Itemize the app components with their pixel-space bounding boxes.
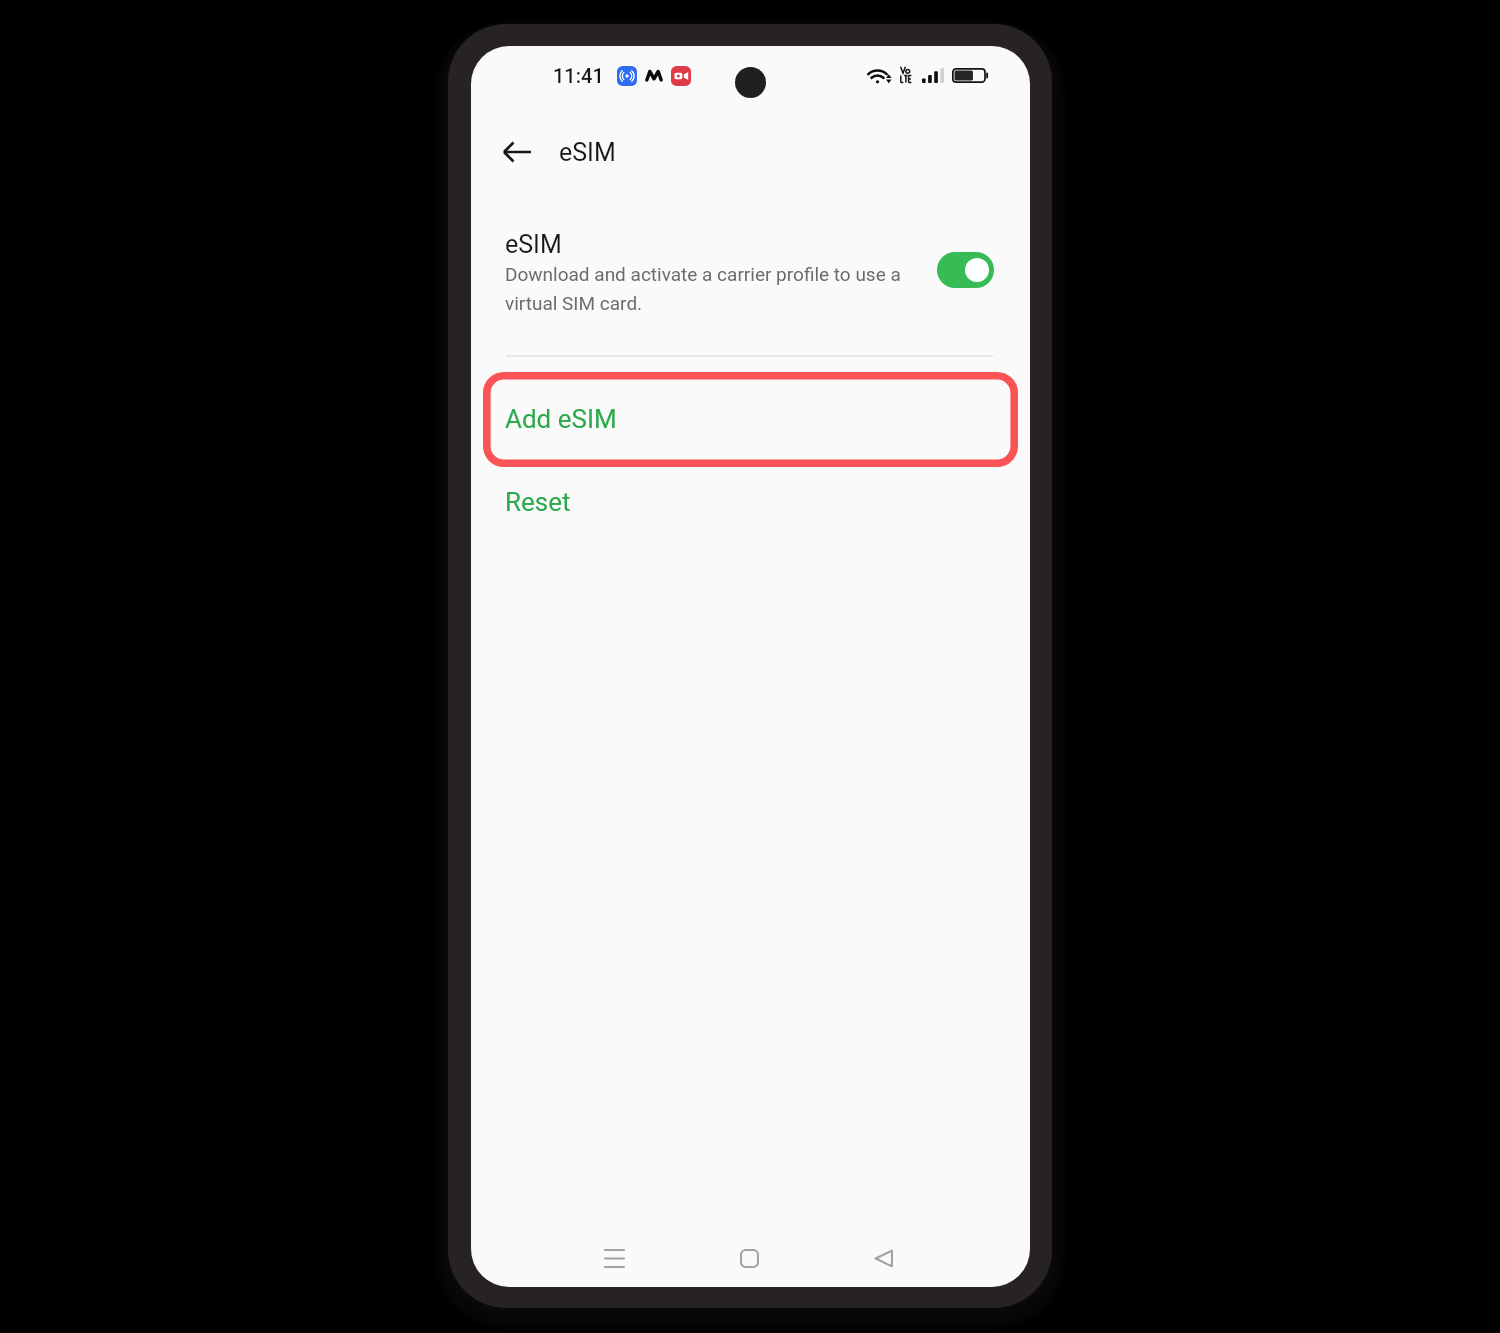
staticText: Reset <box>505 487 571 517</box>
button[interactable]: Home <box>723 1232 775 1284</box>
staticText: 11:41 <box>553 64 604 87</box>
staticText: eSIM <box>505 230 562 259</box>
staticText: eSIM <box>559 138 616 167</box>
button[interactable]: Back <box>493 128 541 176</box>
button[interactable]: Add eSIM <box>483 372 1018 467</box>
staticText: Add eSIM <box>505 404 617 434</box>
button[interactable]: eSIM <box>471 218 1030 314</box>
staticText: Download and activate a carrier profile … <box>505 263 913 315</box>
button[interactable]: eSIM enabled toggle <box>937 252 994 288</box>
button[interactable]: Back <box>857 1232 909 1284</box>
button[interactable]: Recent apps <box>588 1232 640 1284</box>
button[interactable]: Reset <box>471 471 1030 533</box>
